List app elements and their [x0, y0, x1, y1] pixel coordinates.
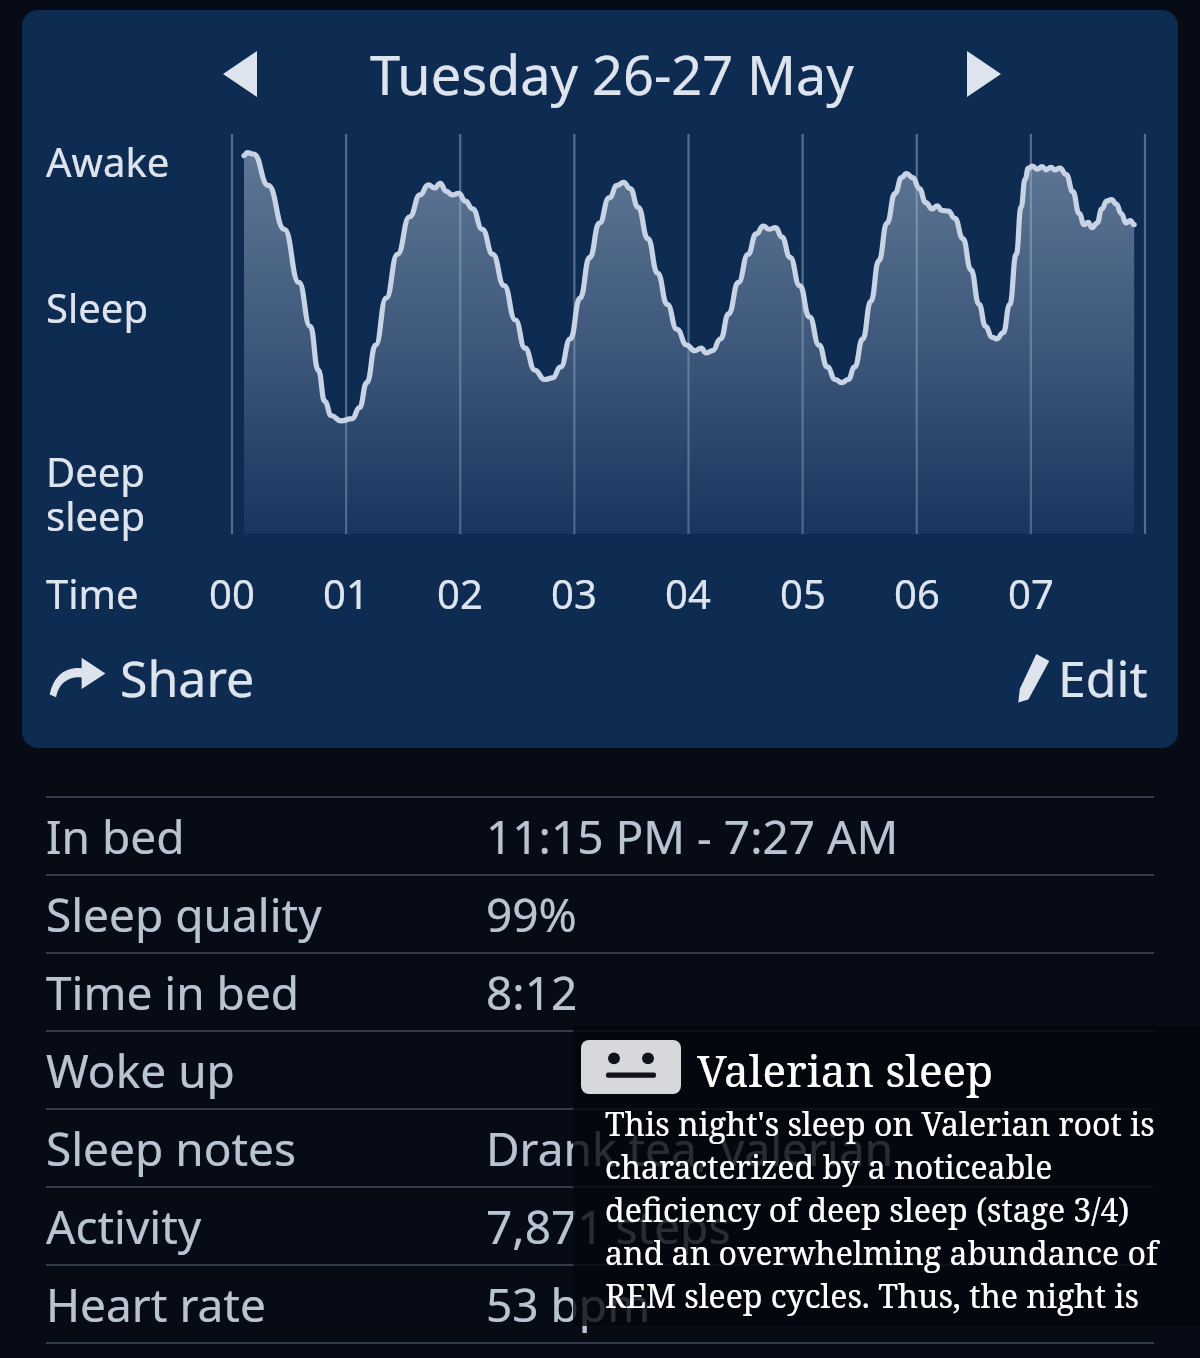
staticText: Valerian sleep: [697, 1040, 993, 1100]
staticText: 8:12: [486, 961, 578, 1024]
staticText: Woke up: [46, 1039, 235, 1102]
staticText: Activity: [46, 1195, 202, 1258]
button[interactable]: Share: [48, 644, 255, 712]
staticText: 00: [209, 566, 255, 620]
staticText: 05: [780, 566, 826, 620]
staticText: Sleep quality: [46, 883, 322, 946]
staticText: 02: [437, 566, 483, 620]
staticText: 53 bpm: [486, 1273, 651, 1336]
staticText: 06: [894, 566, 940, 620]
button[interactable]: Woke up: [46, 1032, 1154, 1108]
staticText: 07: [1008, 566, 1054, 620]
staticText: Share: [120, 644, 255, 712]
button[interactable]: Previous night: [202, 36, 278, 112]
staticText: 7,871 steps: [486, 1195, 731, 1258]
button[interactable]: Sleep quality: [46, 876, 1154, 952]
staticText: Sleep notes: [46, 1117, 297, 1180]
staticText: In bed: [46, 805, 185, 868]
staticText: Drank tea, valerian: [486, 1117, 894, 1180]
staticText: 01: [323, 566, 369, 620]
button[interactable]: In bed: [46, 798, 1154, 874]
staticText: Heart rate: [46, 1273, 266, 1336]
staticText: Sleep: [46, 280, 148, 334]
button[interactable]: Activity: [46, 1188, 1154, 1264]
staticText: This night's sleep on Valerian root is c…: [605, 1102, 1190, 1326]
button[interactable]: Sleep notes: [46, 1110, 1154, 1186]
staticText: Tuesday 26-27 May: [370, 37, 854, 111]
staticText: Deep sleep: [46, 444, 146, 542]
button[interactable]: Next night: [946, 36, 1022, 112]
button[interactable]: Heart rate: [46, 1266, 1154, 1342]
staticText: Edit: [1058, 644, 1148, 712]
staticText: 99%: [486, 883, 577, 946]
button[interactable]: Time in bed: [46, 954, 1154, 1030]
staticText: Time in bed: [46, 961, 300, 1024]
button[interactable]: Edit: [1014, 644, 1148, 712]
staticText: 04: [665, 566, 711, 620]
staticText: Awake: [46, 134, 170, 188]
staticText: 11:15 PM - 7:27 AM: [486, 805, 899, 868]
staticText: 03: [551, 566, 597, 620]
staticText: Time: [46, 566, 139, 620]
